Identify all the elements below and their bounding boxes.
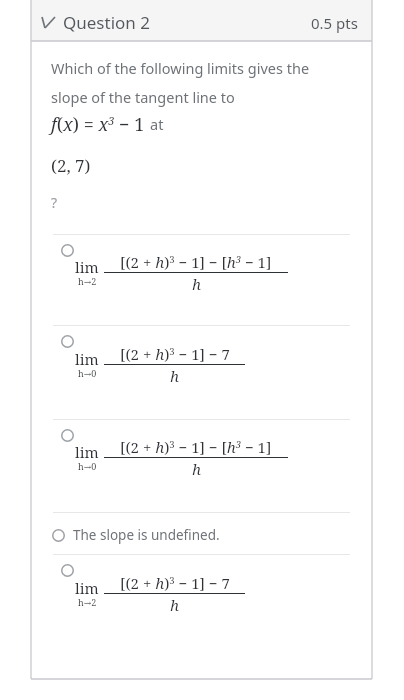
staticText: lim xyxy=(75,442,99,462)
staticText: Which of the following limits gives the xyxy=(51,58,310,78)
staticText: Question 2 xyxy=(63,11,150,34)
staticText: ? xyxy=(51,193,58,212)
staticText: slope of the tangent line to xyxy=(51,87,235,107)
other: Answered xyxy=(41,17,56,29)
staticText: h xyxy=(170,366,179,386)
staticText: h→2 xyxy=(78,596,97,608)
staticText: lim xyxy=(75,349,99,369)
staticText: h→0 xyxy=(78,367,97,379)
staticText: h xyxy=(170,595,179,615)
staticText: (2, 7) xyxy=(51,154,91,177)
button[interactable]: The slope is undefined. xyxy=(31,513,372,554)
staticText: The slope is undefined. xyxy=(73,526,220,544)
staticText: [(2 + h)3 − 1] − 7 xyxy=(120,344,230,364)
staticText: 0.5 pts xyxy=(311,13,358,33)
staticText: [(2 + h)3 − 1] − 7 xyxy=(120,573,230,593)
staticText: h xyxy=(192,459,201,479)
staticText: h→2 xyxy=(78,275,97,287)
button[interactable]: Answered xyxy=(41,11,382,34)
staticText: f(x) = x3 − 1 xyxy=(51,112,145,137)
staticText: lim xyxy=(75,578,99,598)
staticText: at xyxy=(150,114,164,134)
button[interactable]: Answer choice limit as h approaches 2 xyxy=(31,555,372,648)
staticText: h→0 xyxy=(78,460,97,472)
staticText: [(2 + h)3 − 1] − [h3 − 1] xyxy=(120,437,272,457)
button[interactable]: Answer choice limit as h approaches 0 xyxy=(31,420,372,512)
staticText: h xyxy=(192,274,201,294)
staticText: [(2 + h)3 − 1] − [h3 − 1] xyxy=(120,252,272,272)
staticText: lim xyxy=(75,257,99,277)
button[interactable]: Answer choice limit as h approaches 2 xyxy=(31,235,372,325)
button[interactable]: Answer choice limit as h approaches 0 xyxy=(31,326,372,419)
